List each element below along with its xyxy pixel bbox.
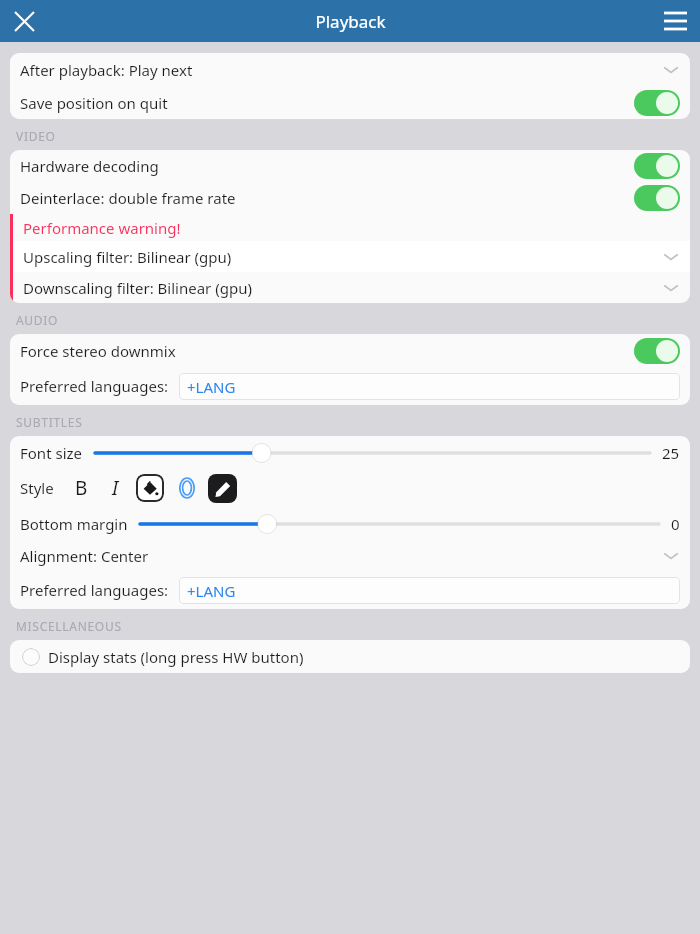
staticText: B — [75, 475, 88, 501]
staticText: Performance warning! — [23, 218, 181, 238]
staticText: Playback — [315, 10, 386, 33]
staticText: 0 — [671, 514, 680, 534]
button[interactable]: Alignment: Center — [10, 540, 690, 571]
button[interactable]: Close — [4, 1, 44, 41]
button[interactable]: Toggle — [634, 338, 680, 364]
staticText: Alignment: Center — [20, 546, 149, 566]
button[interactable]: +LANG — [179, 577, 680, 604]
staticText: Bottom margin — [20, 514, 128, 534]
button[interactable]: After playback: Play next — [10, 53, 690, 86]
staticText: Force stereo downmix — [20, 341, 176, 361]
button[interactable]: Deinterlace: double frame rate — [10, 182, 690, 214]
button[interactable]: Font size — [10, 436, 690, 469]
button[interactable]: Toggle — [634, 185, 680, 211]
staticText: Style — [20, 478, 54, 498]
button[interactable]: Toggle — [634, 90, 680, 116]
button[interactable]: Hardware decoding — [10, 150, 690, 182]
staticText: Save position on quit — [20, 93, 168, 113]
staticText: I — [112, 475, 119, 501]
button[interactable]: Text color — [136, 474, 164, 502]
button[interactable]: Downscaling filter: Bilinear (gpu) — [13, 272, 690, 303]
staticText: Upscaling filter: Bilinear (gpu) — [23, 247, 232, 267]
staticText: Preferred languages: — [20, 376, 169, 396]
button[interactable]: Toggle — [634, 153, 680, 179]
staticText: MISCELLANEOUS — [16, 618, 122, 634]
button[interactable]: Bold — [68, 475, 94, 501]
button[interactable]: Italic — [102, 475, 128, 501]
button[interactable]: Bottom margin — [10, 507, 690, 540]
staticText: Display stats (long press HW button) — [48, 647, 304, 667]
staticText: Preferred languages: — [20, 580, 169, 600]
button[interactable]: Upscaling filter: Bilinear (gpu) — [13, 241, 690, 272]
staticText: VIDEO — [16, 128, 56, 144]
button[interactable]: Background color — [208, 474, 237, 503]
button[interactable]: Menu — [655, 1, 695, 41]
staticText: After playback: Play next — [20, 60, 193, 80]
staticText: SUBTITLES — [16, 414, 83, 430]
staticText: +LANG — [187, 377, 236, 397]
staticText: Font size — [20, 443, 83, 463]
staticText: Downscaling filter: Bilinear (gpu) — [23, 278, 252, 298]
staticText: AUDIO — [16, 312, 59, 328]
staticText: Hardware decoding — [20, 156, 159, 176]
button[interactable]: Outline — [174, 475, 200, 501]
button[interactable]: Force stereo downmix — [10, 334, 690, 367]
button[interactable]: Save position on quit — [10, 86, 690, 119]
staticText: Deinterlace: double frame rate — [20, 188, 236, 208]
staticText: 25 — [662, 443, 680, 463]
staticText: +LANG — [187, 581, 236, 601]
button[interactable]: Display stats (long press HW button) — [10, 640, 690, 673]
button[interactable]: +LANG — [179, 373, 680, 400]
